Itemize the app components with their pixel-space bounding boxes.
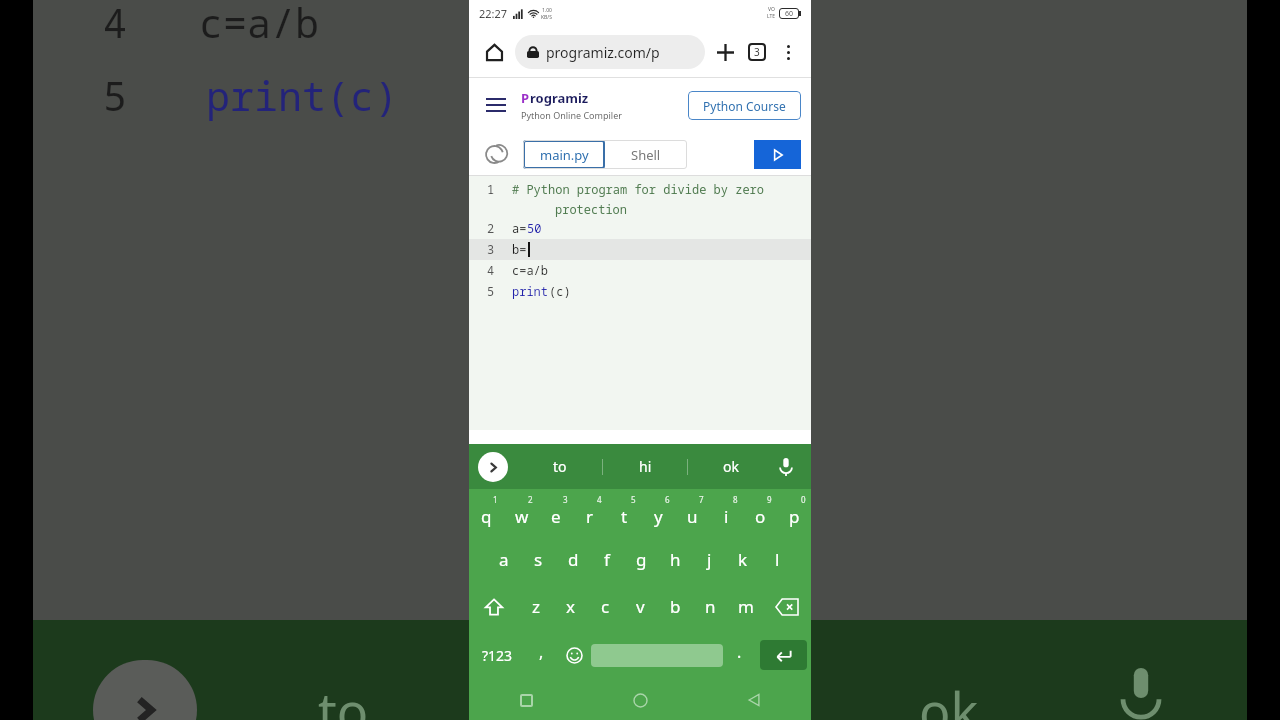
staticText: 9 (767, 494, 772, 505)
button[interactable]: Run (754, 140, 801, 169)
staticText: x (566, 595, 575, 618)
button[interactable]: Menu (479, 88, 513, 122)
button[interactable]: Expand toolbar (478, 452, 508, 482)
button[interactable]: Emoji (558, 630, 591, 680)
button[interactable]: Voice input (773, 454, 799, 480)
button[interactable]: d (556, 536, 590, 583)
staticText: f (604, 548, 610, 571)
staticText: to (318, 675, 369, 720)
staticText: b (670, 595, 681, 618)
staticText: p (789, 505, 800, 528)
button[interactable]: o (743, 489, 777, 536)
staticText: h (670, 548, 681, 571)
button[interactable]: f (590, 536, 624, 583)
button[interactable]: j (692, 536, 726, 583)
staticText: . (737, 641, 742, 663)
staticText: m (738, 595, 754, 618)
staticText: v (636, 595, 645, 618)
staticText: print(c) (206, 68, 398, 122)
button[interactable]: v (623, 583, 658, 630)
button[interactable]: g (624, 536, 658, 583)
button[interactable]: P (521, 89, 622, 121)
button[interactable]: Back (697, 680, 811, 720)
staticText: (c) (549, 283, 571, 299)
button[interactable]: q (469, 489, 504, 536)
button[interactable]: hi (603, 444, 688, 489)
button[interactable]: l (760, 536, 794, 583)
button[interactable]: n (693, 583, 728, 630)
staticText: i (724, 505, 729, 528)
staticText: k (738, 548, 748, 571)
staticText: c=a/b (512, 262, 549, 278)
staticText: 22:27 (479, 6, 508, 21)
staticText: 0 (801, 494, 806, 505)
staticText: s (534, 548, 543, 571)
button[interactable]: Enter (760, 640, 807, 670)
button[interactable]: a (486, 536, 521, 583)
staticText: n (705, 595, 716, 618)
staticText: d (568, 548, 579, 571)
button[interactable]: to (517, 444, 603, 489)
staticText: ok (723, 457, 739, 476)
button[interactable]: Dark mode (479, 139, 509, 169)
button[interactable]: b (658, 583, 693, 630)
staticText: rogramiz (530, 89, 589, 107)
button[interactable]: Space (591, 644, 723, 667)
staticText: 5 (103, 68, 199, 122)
button[interactable]: w (504, 489, 539, 536)
button[interactable]: u (675, 489, 709, 536)
button[interactable]: m (728, 583, 763, 630)
button[interactable]: s (521, 536, 556, 583)
staticText: u (687, 505, 698, 528)
button[interactable]: Python Course (688, 91, 801, 120)
button[interactable]: y (641, 489, 675, 536)
button[interactable]: Backspace (763, 583, 811, 630)
button[interactable]: Home (477, 35, 511, 69)
button[interactable]: Shift (469, 583, 518, 630)
staticText: a= (512, 220, 527, 236)
staticText: c (601, 595, 610, 618)
staticText: programiz.com/p (546, 43, 660, 62)
staticText: y (654, 505, 663, 528)
staticText: VO (768, 6, 775, 13)
staticText: b= (512, 241, 527, 257)
button[interactable]: Home (583, 680, 697, 720)
button[interactable]: programiz.com/p (515, 35, 705, 69)
staticText: 6 (665, 494, 670, 505)
staticText: 4 (487, 262, 495, 278)
staticText: 5 (631, 494, 636, 505)
staticText: to (553, 457, 567, 476)
staticText: t (621, 505, 628, 528)
button[interactable]: t (607, 489, 641, 536)
staticText: ?123 (482, 646, 513, 665)
staticText: g (636, 548, 647, 571)
button[interactable]: New tab (709, 36, 741, 68)
staticText: Shell (631, 146, 661, 164)
button[interactable]: c (588, 583, 623, 630)
button[interactable]: Tabs (741, 36, 773, 68)
button[interactable]: ok (688, 444, 773, 489)
button[interactable]: k (726, 536, 760, 583)
staticText: 60 (785, 9, 794, 19)
button[interactable]: x (553, 583, 588, 630)
button[interactable]: h (658, 536, 692, 583)
button[interactable]: z (518, 583, 553, 630)
button[interactable]: p (777, 489, 811, 536)
button[interactable]: Recents (469, 680, 583, 720)
staticText: 3 (563, 494, 568, 505)
staticText: 4 c=a/b (103, 0, 319, 49)
button[interactable]: Shell (605, 140, 687, 169)
staticText: P (521, 89, 530, 107)
button[interactable]: More options (773, 37, 803, 67)
staticText: # Python program for divide by zero (512, 181, 765, 197)
button[interactable]: ?123 (469, 630, 525, 680)
staticText: 8 (733, 494, 738, 505)
button[interactable]: main.py (523, 140, 605, 169)
button[interactable]: , (525, 630, 558, 680)
staticText: main.py (540, 146, 589, 164)
button[interactable]: e (539, 489, 573, 536)
button[interactable]: i (709, 489, 743, 536)
button[interactable]: . (723, 630, 756, 680)
button[interactable]: r (573, 489, 607, 536)
staticText: j (707, 548, 712, 571)
